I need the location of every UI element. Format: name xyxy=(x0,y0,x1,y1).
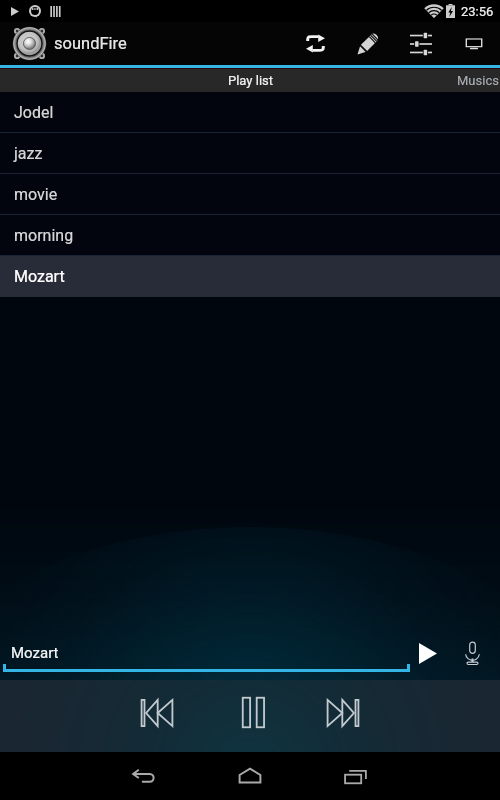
button[interactable]: Next xyxy=(312,685,374,747)
button[interactable]: Jodel xyxy=(0,92,500,133)
button[interactable]: Musics xyxy=(310,69,500,92)
button[interactable]: Edit xyxy=(353,22,383,65)
button[interactable]: Voice search xyxy=(445,626,500,680)
staticText: Play list xyxy=(228,73,273,88)
button[interactable]: Equalizer xyxy=(406,22,436,65)
button[interactable]: Back xyxy=(116,752,172,800)
button[interactable]: Home xyxy=(222,752,278,800)
button[interactable]: Recents xyxy=(328,752,384,800)
staticText: Musics xyxy=(457,73,499,88)
button[interactable]: movie xyxy=(0,174,500,215)
button[interactable]: morning xyxy=(0,215,500,256)
button[interactable]: Repeat xyxy=(300,22,330,65)
staticText: movie xyxy=(14,185,58,204)
button[interactable]: Previous xyxy=(126,685,188,747)
button[interactable]: Mozart xyxy=(0,626,411,680)
button[interactable]: Play list xyxy=(190,69,310,92)
staticText: soundFire xyxy=(54,34,127,53)
staticText: Mozart xyxy=(11,644,59,662)
button[interactable]: Pause xyxy=(219,685,281,747)
button[interactable]: Play xyxy=(411,626,445,680)
button[interactable]: Cast xyxy=(459,22,489,65)
staticText: Mozart xyxy=(14,267,65,286)
button[interactable]: jazz xyxy=(0,133,500,174)
button[interactable]: Mozart xyxy=(0,256,500,297)
staticText: 23:56 xyxy=(461,4,494,19)
staticText: jazz xyxy=(14,144,43,163)
staticText: Jodel xyxy=(14,103,54,122)
staticText: morning xyxy=(14,226,74,245)
